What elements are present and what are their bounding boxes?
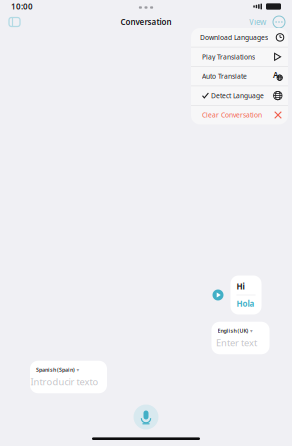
staticText: ▾ (250, 328, 253, 334)
button[interactable]: Start recording (131, 402, 161, 432)
staticText: Hi (236, 281, 244, 292)
staticText: Spanish (Spain) (36, 366, 75, 373)
button[interactable]: English (UK) (211, 322, 269, 354)
staticText: Detect Language (211, 91, 264, 100)
button[interactable]: Detect Language (191, 86, 288, 105)
button[interactable]: More options (269, 14, 287, 30)
staticText: Hola (236, 298, 254, 309)
staticText: English (UK) (217, 327, 248, 334)
staticText: Introducir texto (30, 375, 98, 388)
button[interactable]: Play Translations (191, 47, 288, 66)
button[interactable]: Download Languages (189, 28, 290, 47)
staticText: Conversation (120, 17, 171, 27)
button[interactable]: View (246, 13, 269, 31)
staticText: Enter text (216, 336, 257, 349)
staticText: Auto Translate (202, 72, 247, 81)
button[interactable]: Auto Translate (191, 67, 288, 86)
button[interactable]: Play translation (210, 287, 225, 302)
staticText: Download Languages (200, 33, 268, 42)
staticText: ▾ (76, 367, 79, 373)
staticText: View (249, 17, 266, 27)
staticText: Play Translations (202, 52, 255, 61)
staticText: Clear Conversation (202, 111, 262, 119)
staticText: A (273, 69, 278, 80)
button[interactable]: Spanish (Spain) (30, 361, 107, 393)
button[interactable]: Toggle Sidebar (5, 13, 24, 30)
staticText: 10:00 (11, 1, 33, 12)
button[interactable]: Clear Conversation (191, 106, 288, 124)
